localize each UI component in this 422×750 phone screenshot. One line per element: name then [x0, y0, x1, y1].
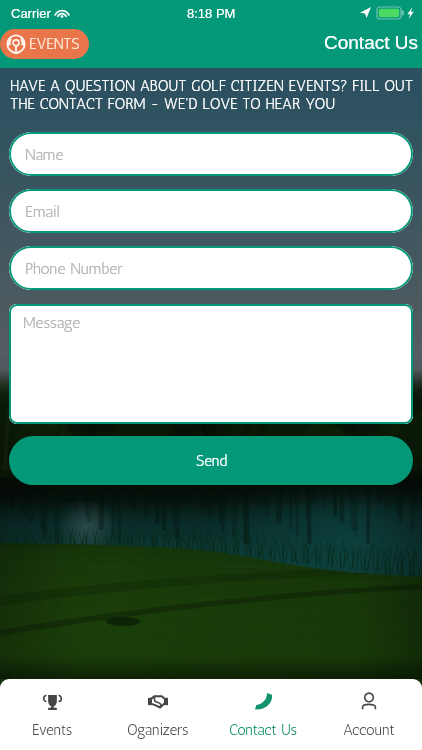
button[interactable]: Golf Citizen Events	[0, 29, 89, 59]
button[interactable]: Phone Number	[9, 246, 413, 290]
other: Golf Citizen Events	[6, 34, 26, 54]
button[interactable]: Message	[9, 304, 413, 424]
staticText: Carrier	[11, 6, 51, 21]
button[interactable]: Events	[0, 679, 105, 750]
staticText: Email	[25, 202, 60, 221]
staticText: EVENTS	[29, 35, 80, 53]
button[interactable]: Account	[316, 679, 422, 750]
button[interactable]: Email	[9, 189, 413, 233]
button[interactable]: Name	[9, 132, 413, 176]
staticText: 8:18 PM	[187, 6, 236, 21]
staticText: Send	[196, 452, 227, 470]
staticText: Events	[32, 721, 73, 739]
staticText: Contact Us	[324, 32, 418, 53]
staticText: Oganizers	[127, 721, 189, 739]
button[interactable]: Send	[9, 436, 413, 485]
staticText: Phone Number	[25, 259, 123, 278]
staticText: Name	[25, 145, 64, 164]
staticText: Message	[23, 313, 81, 332]
staticText: Account	[343, 721, 395, 739]
staticText: Contact Us	[229, 721, 297, 739]
button[interactable]: Oganizers	[105, 679, 210, 750]
staticText: HAVE A QUESTION ABOUT GOLF CITIZEN EVENT…	[10, 77, 413, 113]
button[interactable]: Contact Us	[210, 679, 316, 750]
